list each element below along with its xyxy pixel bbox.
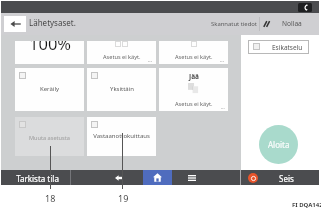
- button[interactable]: Asetus ei käyt.: [87, 41, 156, 64]
- staticText: Asetus ei käyt.: [175, 53, 213, 61]
- staticText: FI DQA142: [292, 201, 321, 209]
- button[interactable]: Nollaa: [282, 19, 302, 28]
- button[interactable]: Phone: [298, 3, 312, 12]
- staticText: Lähetysaset.: [29, 17, 76, 28]
- staticText: ...: [148, 57, 153, 64]
- staticText: Yksittäin: [110, 85, 134, 93]
- staticText: 19: [118, 192, 129, 204]
- button[interactable]: Aloita: [259, 125, 298, 164]
- button[interactable]: Muuta asetusta: [15, 117, 84, 156]
- button[interactable]: 100%: [15, 41, 84, 64]
- button[interactable]: Skannatut tiedot: [211, 20, 257, 28]
- staticText: ...: [220, 57, 225, 64]
- button[interactable]: Back: [71, 170, 123, 185]
- button[interactable]: Tarkista tila: [3, 173, 72, 184]
- button[interactable]: Keräily: [15, 68, 84, 111]
- staticText: Esikatselu: [272, 43, 303, 52]
- button[interactable]: Clear settings: [262, 19, 271, 28]
- button[interactable]: Home: [143, 170, 172, 185]
- staticText: 18: [45, 192, 56, 204]
- button[interactable]: Jää: [159, 68, 228, 111]
- button[interactable]: Vastaanottokuittaus: [87, 117, 156, 156]
- button[interactable]: Esikatselu: [248, 40, 309, 54]
- staticText: Asetus ei käyt.: [175, 100, 213, 108]
- staticText: Vastaanottokuittaus: [93, 132, 150, 140]
- staticText: Asetus ei käyt.: [103, 53, 141, 61]
- staticText: Seis: [279, 173, 294, 184]
- staticText: Muuta asetusta: [29, 134, 70, 142]
- button[interactable]: Yksittäin: [87, 68, 156, 111]
- staticText: Aloita: [268, 139, 290, 150]
- button[interactable]: Back: [4, 16, 26, 32]
- staticText: Keräily: [40, 85, 59, 93]
- staticText: ...: [221, 104, 225, 110]
- button[interactable]: Menu: [172, 170, 212, 185]
- button[interactable]: Seis: [241, 170, 319, 185]
- staticText: Jää: [189, 72, 199, 81]
- staticText: 100%: [29, 41, 72, 54]
- button[interactable]: Asetus ei käyt.: [159, 41, 228, 64]
